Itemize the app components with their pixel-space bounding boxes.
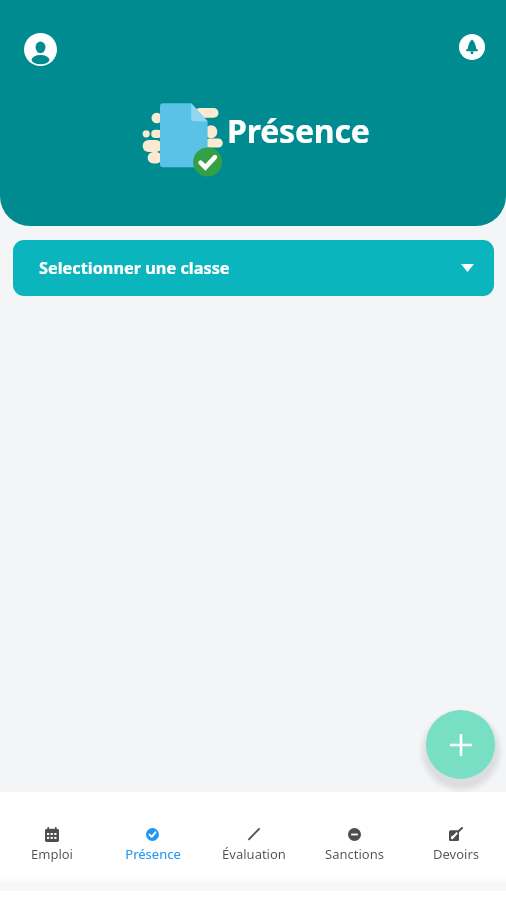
button[interactable]: Selectionner une classe [13, 240, 494, 296]
staticText: Présence [227, 109, 370, 153]
button[interactable]: Profile [20, 29, 60, 69]
button[interactable]: Présence [102, 826, 203, 878]
button[interactable]: Notifications [456, 31, 488, 63]
button[interactable]: Devoirs [405, 826, 506, 878]
staticText: Présence [125, 845, 181, 863]
button[interactable]: Sanctions [304, 826, 405, 878]
staticText: Évaluation [222, 845, 286, 863]
staticText: Devoirs [433, 845, 479, 863]
button[interactable]: Évaluation [203, 826, 304, 878]
staticText: Selectionner une classe [39, 257, 230, 279]
staticText: Sanctions [325, 845, 384, 863]
button[interactable]: Add [426, 710, 495, 779]
staticText: Emploi [31, 845, 73, 863]
button[interactable]: Emploi [1, 826, 102, 878]
